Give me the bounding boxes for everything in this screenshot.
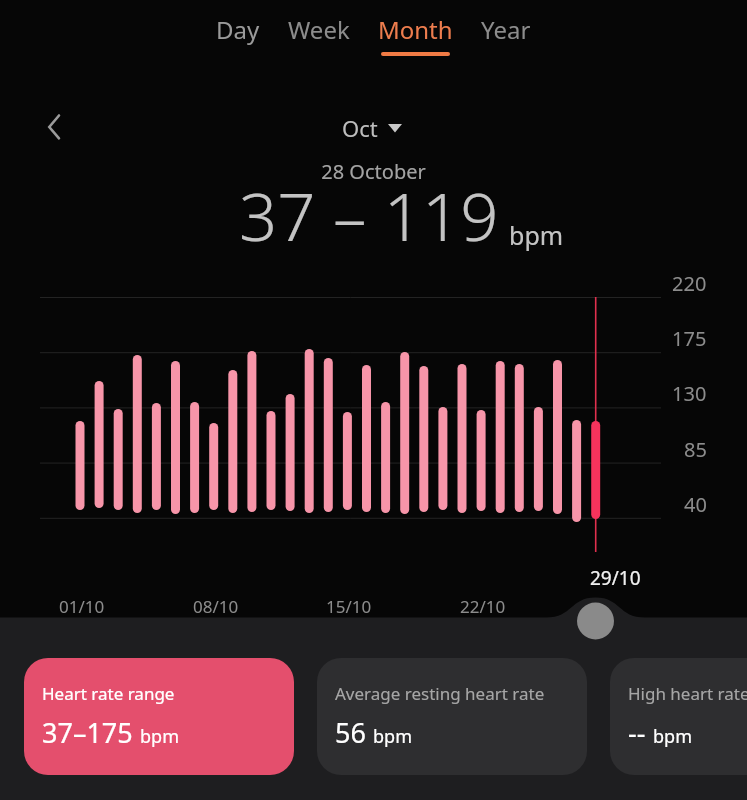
staticText: 01/10 <box>59 595 105 618</box>
staticText: 37–175 <box>42 714 133 751</box>
staticText: bpm <box>509 218 564 252</box>
staticText: 40 <box>684 491 707 518</box>
staticText: Month <box>378 13 453 46</box>
staticText: 220 <box>672 270 707 297</box>
staticText: Average resting heart rate <box>335 682 545 705</box>
staticText: 15/10 <box>326 595 372 618</box>
staticText: bpm <box>373 724 412 749</box>
staticText: Week <box>288 13 350 46</box>
staticText: Year <box>481 13 531 46</box>
button[interactable]: Oct <box>342 113 402 143</box>
button[interactable]: Week <box>288 13 350 56</box>
staticText: Heart rate range <box>42 682 175 705</box>
staticText: -- <box>628 714 646 751</box>
button[interactable]: Day <box>216 13 260 56</box>
staticText: 37 – 119 <box>239 169 499 260</box>
staticText: 56 <box>335 714 366 751</box>
staticText: 22/10 <box>460 595 506 618</box>
staticText: 130 <box>672 380 707 407</box>
button[interactable]: Heart rate range <box>24 658 294 775</box>
button[interactable]: High heart rate <box>610 658 747 775</box>
staticText: bpm <box>140 724 179 749</box>
staticText: bpm <box>653 724 692 749</box>
staticText: 28 October <box>0 158 747 185</box>
button[interactable]: Average resting heart rate <box>317 658 587 775</box>
button[interactable] <box>577 602 615 640</box>
button[interactable]: Month <box>378 13 453 56</box>
staticText: 85 <box>684 436 707 463</box>
staticText: Oct <box>342 113 378 143</box>
staticText: 08/10 <box>193 595 239 618</box>
staticText: Day <box>216 13 260 46</box>
button[interactable]: Year <box>481 13 531 56</box>
staticText: 175 <box>672 325 707 352</box>
button[interactable] <box>40 108 70 148</box>
staticText: High heart rate <box>628 682 747 705</box>
staticText: 29/10 <box>590 565 641 591</box>
